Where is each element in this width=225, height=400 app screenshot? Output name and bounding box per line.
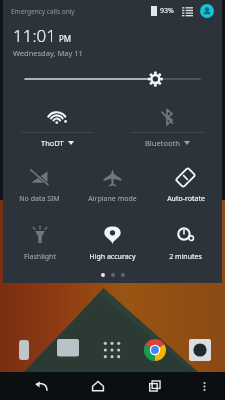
staticText: PM: [59, 33, 72, 44]
staticText: Airplane mode: [88, 194, 137, 204]
button[interactable]: ThoDT: [3, 104, 112, 150]
staticText: Auto-rotate: [167, 194, 205, 204]
button[interactable]: Brightness: [3, 64, 222, 94]
staticText: 2 minutes: [169, 252, 202, 262]
staticText: Wednesday, May 11: [13, 48, 83, 58]
staticText: 93%: [160, 6, 174, 16]
button[interactable]: Auto-rotate: [149, 164, 222, 206]
button[interactable]: High accuracy: [76, 222, 149, 264]
button[interactable]: More options: [191, 373, 217, 399]
button[interactable]: No data SIM: [3, 164, 76, 206]
staticText: 11:01: [13, 24, 56, 47]
staticText: No data SIM: [19, 194, 60, 204]
button[interactable]: 2 minutes: [149, 222, 222, 264]
button[interactable]: User profile: [200, 4, 214, 18]
staticText: Emergency calls only: [11, 7, 75, 16]
button[interactable]: Airplane mode: [76, 164, 149, 206]
button[interactable]: Back: [28, 373, 54, 399]
staticText: Bluetooth: [145, 138, 180, 148]
button[interactable]: Flashlight: [3, 222, 76, 264]
button[interactable]: Bluetooth: [112, 104, 222, 150]
button[interactable]: Home: [85, 373, 111, 399]
staticText: High accuracy: [89, 252, 136, 262]
staticText: ThoDT: [41, 138, 64, 148]
staticText: Flashlight: [24, 252, 56, 262]
button[interactable]: Recent apps: [142, 373, 168, 399]
